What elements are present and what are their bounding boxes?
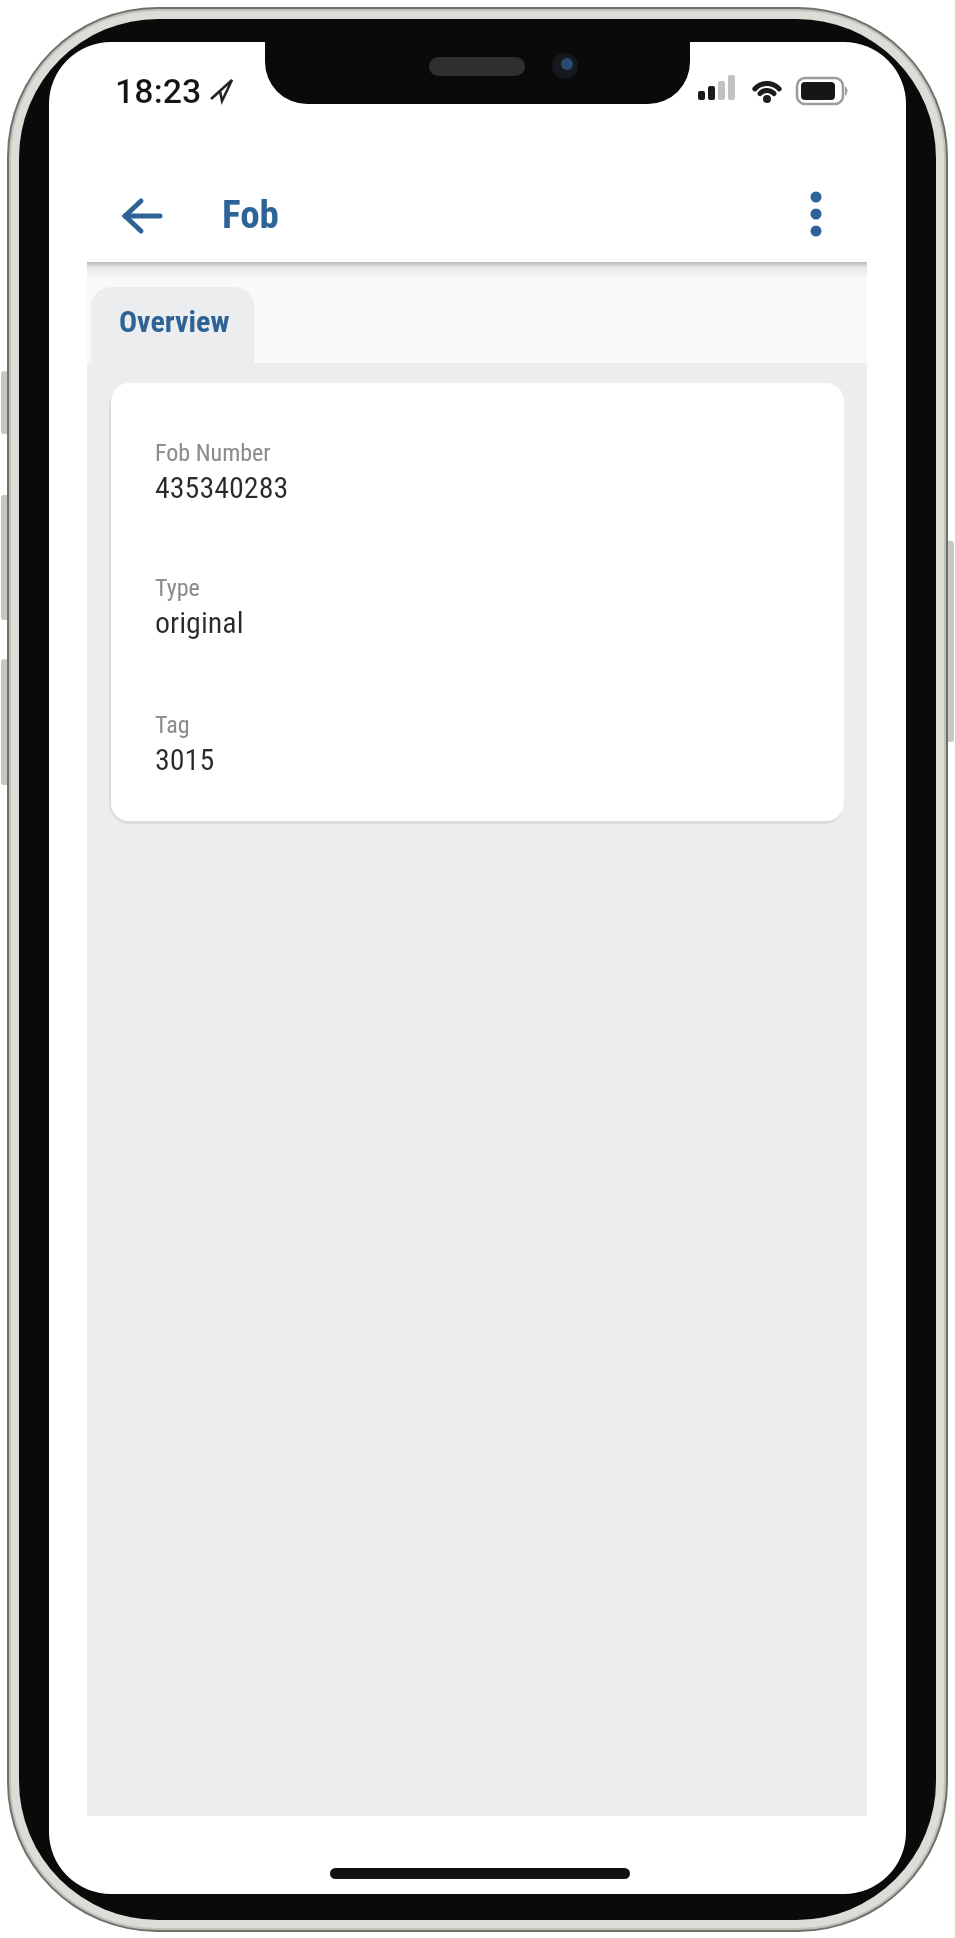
button[interactable]: Overview: [91, 287, 254, 363]
staticText: 435340283: [155, 470, 289, 505]
staticText: Tag: [155, 711, 190, 739]
staticText: Fob: [222, 192, 279, 238]
staticText: original: [155, 605, 244, 640]
staticText: Type: [155, 574, 200, 602]
staticText: 18:23: [115, 71, 202, 111]
staticText: 3015: [155, 742, 215, 777]
button[interactable]: [791, 188, 841, 240]
button[interactable]: [117, 190, 169, 242]
staticText: Fob Number: [155, 439, 271, 467]
staticText: Overview: [119, 304, 230, 339]
